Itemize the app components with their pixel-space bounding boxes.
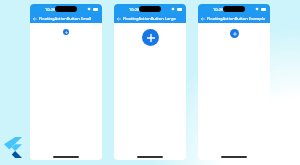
staticText: 10:26 (129, 7, 140, 12)
button[interactable]: Back (32, 16, 38, 22)
staticText: 10:26 (213, 7, 224, 12)
button[interactable]: Back (116, 16, 122, 22)
staticText: FloatingActionButton Small Example (39, 16, 102, 21)
button[interactable]: Back (30, 14, 102, 23)
staticText: 10:26 (45, 7, 56, 12)
button[interactable]: Back (198, 14, 270, 23)
button[interactable]: Back (114, 14, 186, 23)
button[interactable]: Add (230, 29, 239, 38)
staticText: FloatingActionButton Large Example (123, 16, 186, 21)
button[interactable]: Add (142, 29, 159, 46)
button[interactable]: Add (63, 29, 69, 35)
staticText: FloatingActionButton Example (207, 16, 266, 21)
button[interactable]: Back (200, 16, 206, 22)
